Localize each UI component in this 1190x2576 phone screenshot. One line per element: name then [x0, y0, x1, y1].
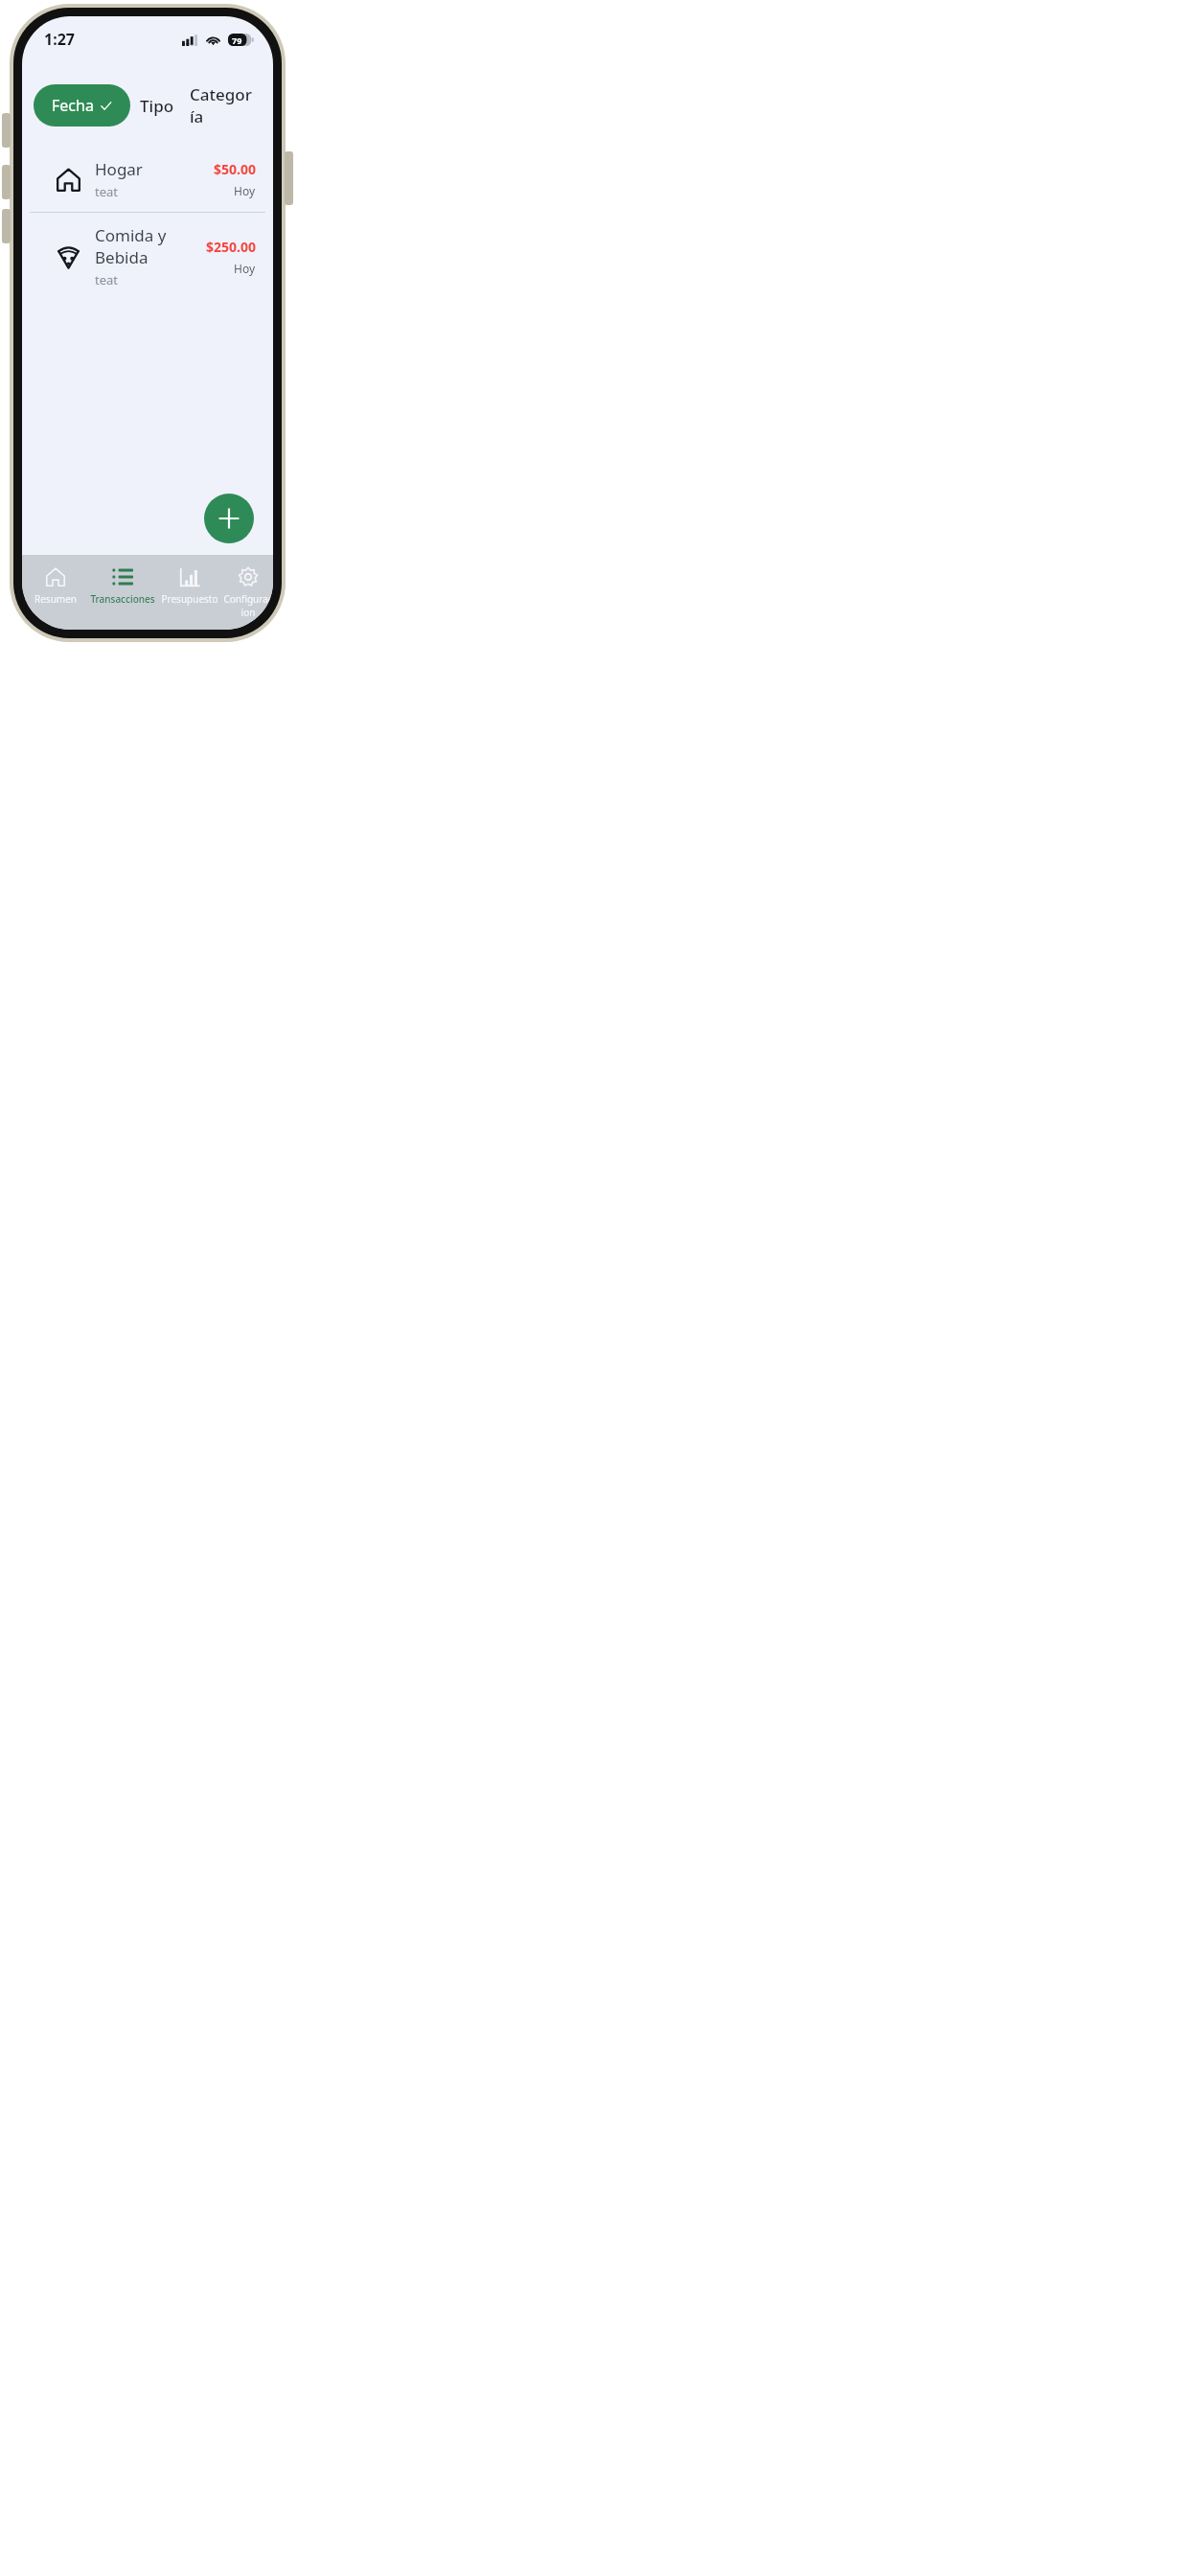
staticText: Fecha [52, 95, 94, 116]
staticText: $50.00 [214, 160, 256, 178]
staticText: Comida y Bebida [95, 224, 206, 268]
button[interactable]: Fecha [34, 84, 130, 126]
button[interactable]: Presupuesto [156, 555, 223, 606]
staticText: $250.00 [206, 238, 256, 256]
button[interactable]: Categoría [184, 74, 260, 137]
staticText: Hoy [234, 183, 256, 198]
staticText: teat [95, 271, 119, 288]
button[interactable]: Tipo [130, 85, 184, 126]
button[interactable]: Hogar [22, 147, 273, 212]
staticText: Hoy [234, 261, 256, 276]
button[interactable]: Comida y Bebida [22, 213, 273, 300]
button[interactable]: Transacciones [89, 555, 156, 606]
staticText: Resumen [34, 592, 77, 606]
staticText: Transacciones [90, 592, 155, 606]
staticText: 79 [232, 34, 242, 46]
staticText: teat [95, 183, 119, 200]
staticText: Tipo [140, 95, 174, 117]
staticText: Categoría [190, 83, 254, 127]
button[interactable]: Resumen [22, 555, 89, 606]
staticText: 1:27 [44, 29, 75, 50]
button[interactable]: Configuracion [223, 555, 273, 619]
staticText: Presupuesto [161, 592, 218, 606]
button[interactable]: Agregar transacción [204, 494, 254, 543]
staticText: Configuracion [223, 592, 273, 619]
staticText: Hogar [95, 158, 143, 180]
